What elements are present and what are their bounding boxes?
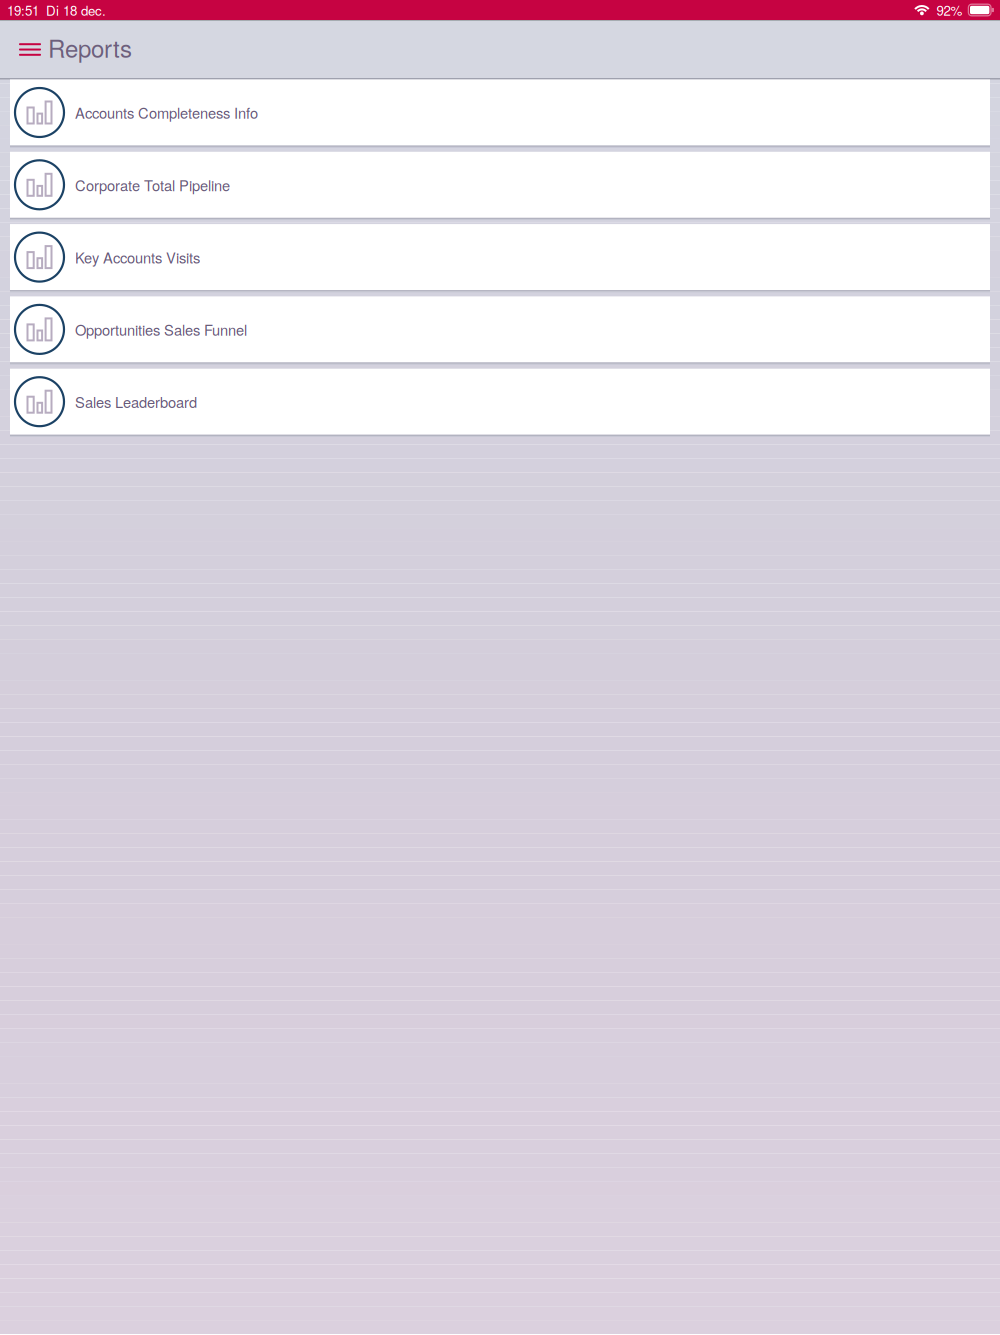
staticText: Di 18 dec. — [46, 0, 106, 20]
button[interactable]: Sales Leaderboard — [10, 369, 990, 435]
staticText: Opportunities Sales Funnel — [75, 319, 247, 340]
staticText: Key Accounts Visits — [75, 247, 200, 268]
button[interactable]: Corporate Total Pipeline — [10, 152, 990, 218]
staticText: 92% — [936, 0, 962, 20]
button[interactable]: Key Accounts Visits — [10, 224, 990, 290]
staticText: Corporate Total Pipeline — [75, 174, 230, 195]
staticText: Sales Leaderboard — [75, 391, 197, 412]
button[interactable]: Opportunities Sales Funnel — [10, 296, 990, 362]
button[interactable]: Accounts Completeness Info — [10, 79, 990, 145]
button[interactable]: Menu — [0, 21, 50, 78]
staticText: Reports — [48, 30, 132, 65]
staticText: 19:51 — [7, 0, 39, 20]
button[interactable]: Reports — [50, 21, 132, 78]
staticText: Accounts Completeness Info — [75, 102, 258, 123]
